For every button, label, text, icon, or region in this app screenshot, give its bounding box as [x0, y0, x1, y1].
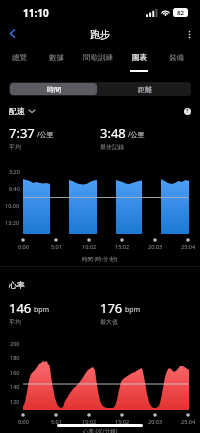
staticText: 3:20 — [9, 168, 20, 175]
staticText: 5:01 — [51, 418, 62, 425]
staticText: 120 — [10, 398, 20, 405]
button[interactable]: 配速 — [9, 104, 36, 118]
staticText: 跑步 — [90, 28, 110, 41]
staticText: 裝備 — [169, 53, 184, 62]
staticText: 6:40 — [9, 185, 20, 192]
staticText: 11:10 — [23, 6, 49, 20]
staticText: 10:02 — [82, 418, 97, 425]
staticText: 總覽 — [12, 53, 27, 62]
staticText: 0:00 — [18, 418, 29, 425]
staticText: 200 — [10, 340, 20, 347]
button[interactable]: 裝備 — [167, 53, 185, 72]
staticText: 20:03 — [148, 418, 163, 425]
button[interactable]: Info — [181, 105, 193, 117]
staticText: 176 — [100, 299, 123, 317]
staticText: 15:02 — [115, 243, 130, 250]
staticText: 160 — [10, 369, 20, 376]
staticText: 5:01 — [51, 243, 62, 250]
staticText: 7:37 — [9, 124, 35, 142]
staticText: bpm — [125, 305, 141, 315]
button[interactable]: More options — [179, 24, 199, 44]
staticText: 數據 — [49, 53, 64, 62]
staticText: 心率 — [9, 280, 25, 290]
staticText: 時間 — [47, 85, 61, 94]
staticText: 0:00 — [18, 243, 29, 250]
staticText: 平均 — [9, 143, 21, 151]
staticText: ? — [186, 108, 189, 115]
staticText: 25:04 — [181, 243, 196, 250]
staticText: 20:03 — [148, 243, 163, 250]
staticText: /公里 — [128, 130, 145, 140]
button[interactable]: 總覽 — [10, 53, 28, 72]
staticText: 146 — [9, 299, 32, 317]
staticText: 平均 — [9, 318, 21, 326]
staticText: 82 — [177, 9, 184, 17]
button[interactable]: 圖表 — [130, 53, 148, 72]
staticText: /公里 — [37, 130, 54, 140]
staticText: 距離 — [138, 85, 152, 94]
staticText: 13:20 — [5, 219, 20, 226]
button[interactable]: 時間 — [10, 83, 97, 95]
staticText: 心率 (次/分鐘) — [83, 427, 118, 433]
button[interactable]: Back — [1, 22, 23, 44]
staticText: 10:00 — [5, 202, 20, 209]
staticText: 圖表 — [132, 53, 147, 62]
button[interactable]: 數據 — [47, 53, 65, 72]
staticText: 25:04 — [181, 418, 196, 425]
staticText: 最大值 — [100, 318, 118, 326]
staticText: 間歇訓練 — [83, 53, 113, 62]
staticText: 時間 (時:分:秒) — [82, 255, 118, 263]
button[interactable]: 間歇訓練 — [81, 53, 115, 72]
button[interactable]: 心率 — [9, 278, 25, 292]
staticText: 最佳記錄 — [100, 143, 124, 151]
staticText: 3:48 — [100, 124, 126, 142]
staticText: 140 — [10, 383, 20, 390]
staticText: 配速 — [9, 106, 25, 116]
button[interactable]: 距離 — [98, 82, 191, 96]
staticText: bpm — [34, 305, 50, 315]
staticText: 10:02 — [82, 243, 97, 250]
staticText: 180 — [10, 354, 20, 361]
staticText: 15:02 — [115, 418, 130, 425]
